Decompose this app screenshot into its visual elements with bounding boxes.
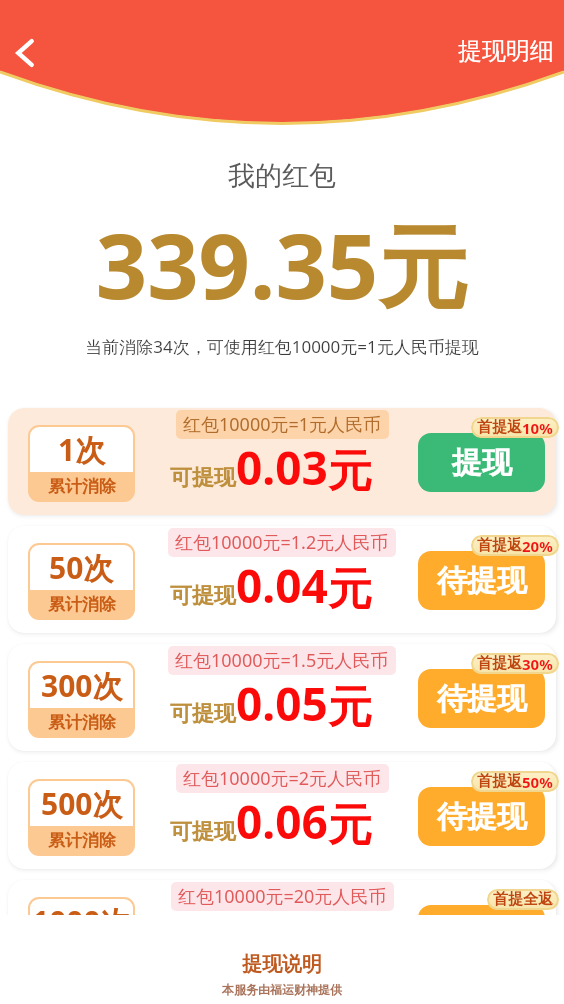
staticText: 元 [328,444,372,499]
staticText: 首提返 [477,418,522,437]
staticText: 累计消除 [48,712,116,733]
staticText: 元 [328,680,372,735]
button[interactable]: Back [1,29,49,77]
staticText: 可提现 [170,464,236,492]
staticText: 500次 [41,783,123,824]
staticText: 可提现 [170,582,236,610]
staticText: 待提现 [437,562,527,600]
staticText: 0.04 [236,554,328,617]
button[interactable]: 提现 [418,433,545,492]
staticText: 可提现 [170,700,236,728]
staticText: 元 [328,798,372,853]
staticText: 红包10000元=1.5元人民币 [175,648,389,673]
button[interactable]: 1000次 [8,880,556,987]
staticText: 首提返 [477,654,522,673]
staticText: 0.05 [236,672,328,735]
staticText: 累计消除 [48,594,116,615]
button[interactable]: 提现明细 [458,36,554,66]
button[interactable]: 待提现 [418,669,545,728]
staticText: 1000次 [32,901,131,942]
staticText: 累计消除 [48,476,116,497]
staticText: 红包10000元=2元人民币 [183,766,382,791]
staticText: 待提现 [437,680,527,718]
button[interactable]: 1次 [8,408,556,515]
staticText: 50次 [49,547,114,588]
staticText: 0.03 [236,436,328,499]
staticText: 当前消除34次，可使用红包10000元=1元人民币提现 [0,335,564,358]
staticText: 首提返 [477,772,522,791]
staticText: 339.35元 [0,203,564,326]
button[interactable]: 待提现 [418,787,545,846]
staticText: 20% [522,536,553,556]
button[interactable]: 300次 [8,644,556,751]
staticText: 累计消除 [48,830,116,851]
staticText: 300次 [41,665,123,706]
staticText: 首提全返 [493,890,553,909]
button[interactable]: 50次 [8,526,556,633]
staticText: 1次 [58,429,106,470]
staticText: 红包10000元=1.2元人民币 [175,530,389,555]
staticText: 元 [328,562,372,617]
button[interactable]: 待提现 [418,551,545,610]
staticText: 50% [522,772,553,792]
staticText: 红包10000元=20元人民币 [178,884,387,909]
staticText: 10% [522,418,553,438]
staticText: 待提现 [437,798,527,836]
staticText: 提现说明 [0,952,564,977]
staticText: 红包10000元=1元人民币 [183,412,382,437]
staticText: 0.06 [236,790,328,853]
staticText: 我的红包 [0,159,564,193]
staticText: 本服务由福运财神提供 [0,982,564,997]
staticText: 首提返 [477,536,522,555]
button[interactable]: 待提现 [418,905,545,964]
staticText: 提现 [452,444,512,482]
staticText: 30% [522,654,553,674]
button[interactable]: 500次 [8,762,556,869]
staticText: 可提现 [170,818,236,846]
staticText: 0.07 [236,908,328,971]
